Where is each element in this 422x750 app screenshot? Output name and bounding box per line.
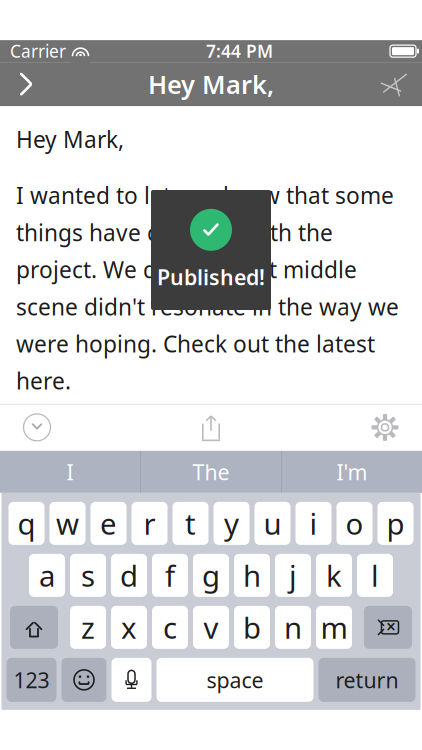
button[interactable]: f <box>152 554 188 597</box>
staticText: 123 <box>13 666 49 694</box>
button[interactable]: x <box>111 606 147 649</box>
staticText: c <box>163 608 177 647</box>
button[interactable]: a <box>29 554 65 597</box>
staticText: space <box>206 666 263 694</box>
button[interactable]: I'm <box>282 451 422 493</box>
staticText: e <box>100 504 117 543</box>
staticText: I'm <box>336 458 367 486</box>
staticText: 7:44 PM <box>206 40 273 63</box>
staticText: I wanted to let you know that some thing… <box>16 180 399 396</box>
button[interactable]: b <box>234 606 270 649</box>
button[interactable]: Back <box>4 62 48 106</box>
staticText: z <box>81 608 95 647</box>
staticText: d <box>120 556 138 595</box>
button[interactable]: c <box>152 606 188 649</box>
staticText: k <box>326 556 342 595</box>
button[interactable]: I <box>0 451 140 493</box>
button[interactable]: g <box>193 554 229 597</box>
staticText: a <box>39 556 55 595</box>
button[interactable]: s <box>70 554 106 597</box>
staticText: Published! <box>157 263 265 291</box>
staticText: The <box>192 458 229 486</box>
staticText: Hey Mark, <box>16 124 124 154</box>
staticText: I <box>67 458 74 486</box>
button[interactable]: Shift <box>10 606 58 649</box>
staticText: Hey Mark, <box>148 67 274 101</box>
button[interactable]: r <box>131 502 167 545</box>
button[interactable]: y <box>213 502 249 545</box>
button[interactable]: j <box>275 554 311 597</box>
button[interactable]: l <box>357 554 393 597</box>
staticText: x <box>121 608 137 647</box>
button[interactable]: space <box>156 658 313 702</box>
button[interactable]: n <box>275 606 311 649</box>
staticText: g <box>202 556 220 595</box>
button[interactable]: 123 <box>6 658 56 702</box>
button[interactable]: i <box>295 502 331 545</box>
button[interactable]: Send <box>370 62 418 106</box>
staticText: b <box>243 608 261 647</box>
button[interactable]: Emoji <box>61 658 106 702</box>
button[interactable]: Share <box>174 404 248 451</box>
staticText: j <box>289 556 297 595</box>
staticText: w <box>56 504 79 543</box>
button[interactable]: The <box>141 451 281 493</box>
staticText: h <box>243 556 261 595</box>
button[interactable]: t <box>172 502 208 545</box>
button[interactable]: o <box>336 502 372 545</box>
staticText: p <box>386 504 404 543</box>
button[interactable]: Hide keyboard <box>0 404 74 451</box>
button[interactable]: d <box>111 554 147 597</box>
staticText: l <box>371 556 379 595</box>
button[interactable]: z <box>70 606 106 649</box>
staticText: o <box>345 504 363 543</box>
button[interactable]: Dictation <box>111 658 151 702</box>
button[interactable]: Settings <box>348 404 422 451</box>
staticText: r <box>143 504 155 543</box>
button[interactable]: k <box>316 554 352 597</box>
button[interactable]: Delete <box>364 606 412 649</box>
button[interactable]: w <box>49 502 85 545</box>
button[interactable]: p <box>377 502 413 545</box>
staticText: i <box>309 504 317 543</box>
button[interactable]: u <box>254 502 290 545</box>
staticText: f <box>165 556 175 595</box>
button[interactable]: m <box>316 606 352 649</box>
button[interactable]: return <box>318 658 415 702</box>
staticText: t <box>185 504 196 543</box>
staticText: y <box>224 504 239 543</box>
staticText: return <box>335 666 398 694</box>
staticText: s <box>81 556 95 595</box>
button[interactable]: e <box>90 502 126 545</box>
button[interactable]: v <box>193 606 229 649</box>
staticText: v <box>203 608 218 647</box>
staticText: n <box>284 608 302 647</box>
staticText: q <box>17 504 35 543</box>
staticText: Carrier <box>10 40 66 63</box>
button[interactable]: h <box>234 554 270 597</box>
staticText: m <box>320 608 347 647</box>
staticText: u <box>263 504 281 543</box>
staticText: × <box>386 615 396 638</box>
button[interactable]: q <box>8 502 44 545</box>
